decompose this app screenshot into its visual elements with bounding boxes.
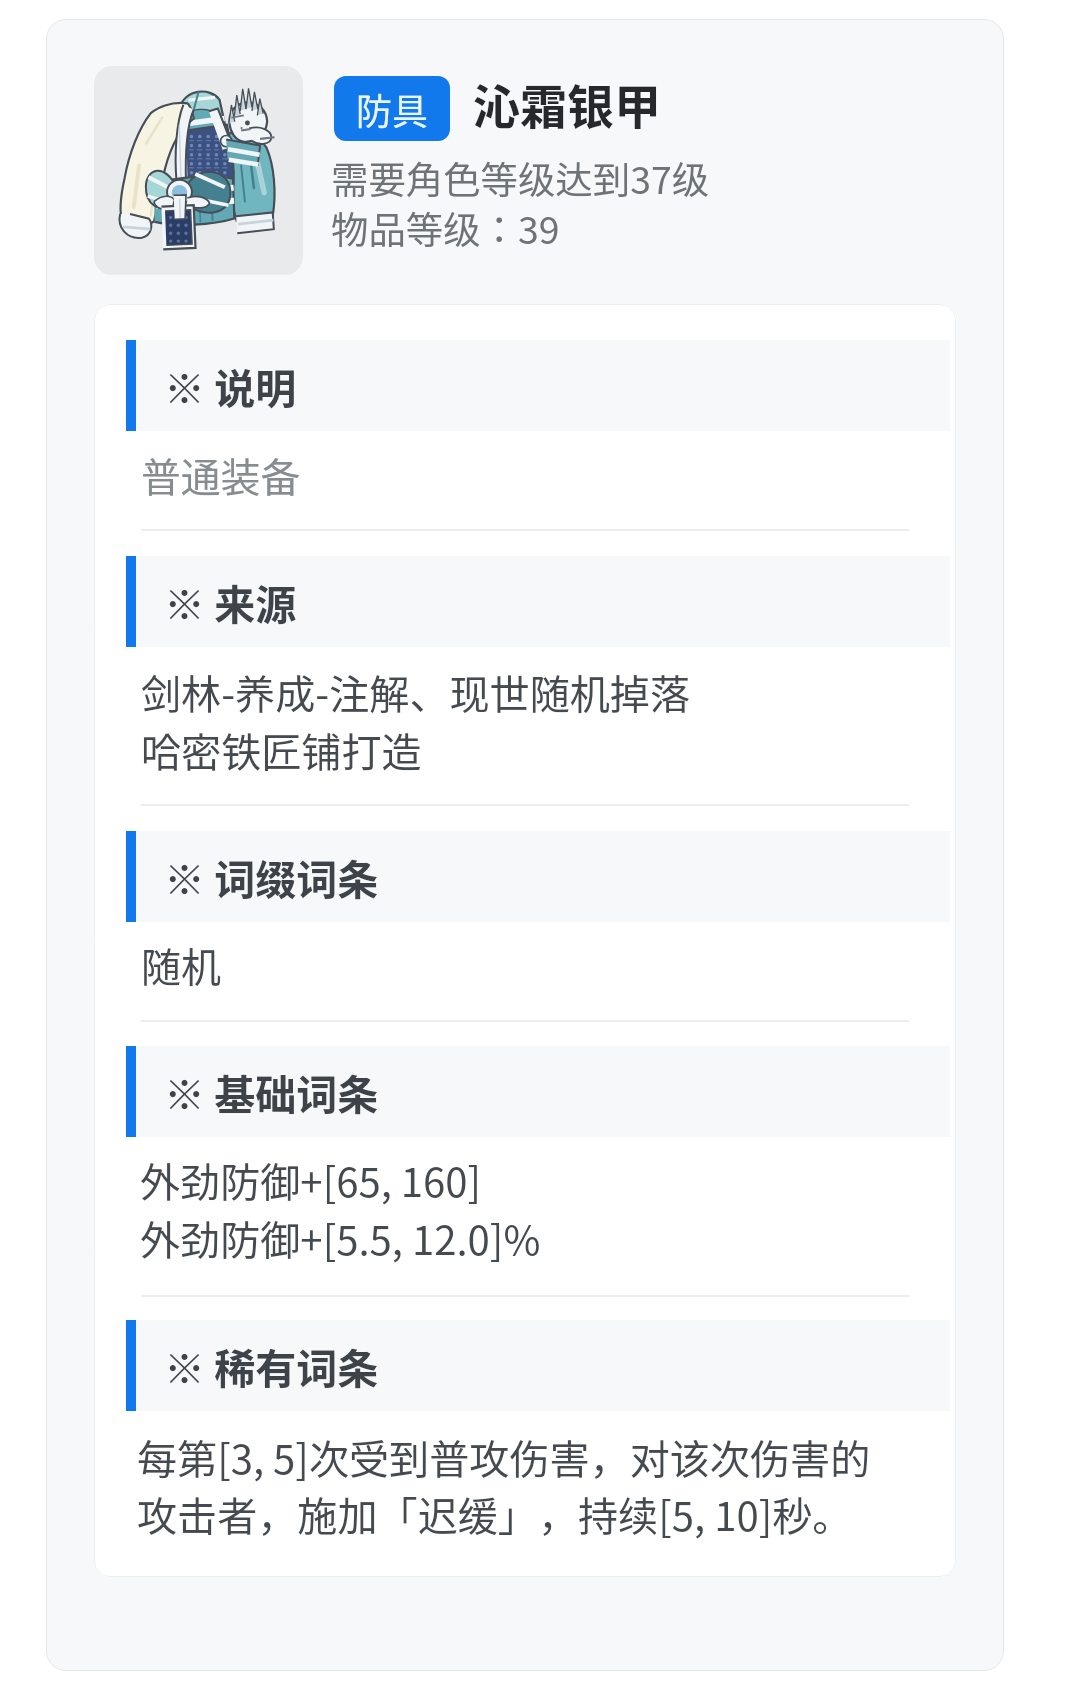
staticText: ※ 稀有词条 — [164, 1336, 379, 1395]
staticText: 随机 — [141, 936, 221, 994]
button[interactable]: ※ 说明 — [126, 340, 950, 431]
staticText: ※ 基础词条 — [164, 1062, 379, 1121]
button[interactable]: ※ 基础词条 — [126, 1046, 950, 1137]
staticText: ※ 词缀词条 — [164, 847, 379, 906]
staticText: 沁霜银甲 — [473, 69, 661, 137]
button[interactable]: 物品图标 — [94, 66, 303, 275]
staticText: 需要角色等级达到37级 — [331, 151, 710, 205]
staticText: ※ 来源 — [164, 572, 297, 631]
staticText: 普通装备 — [141, 446, 301, 504]
staticText: 每第[3, 5]次受到普攻伤害，对该次伤害的攻击者，施加「迟缓」，持续[5, 1… — [137, 1427, 885, 1543]
button[interactable]: 防具 — [334, 76, 450, 141]
button[interactable]: ※ 稀有词条 — [126, 1320, 950, 1411]
button[interactable]: ※ 来源 — [126, 556, 950, 647]
staticText: ※ 说明 — [164, 356, 297, 415]
button[interactable]: ※ 词缀词条 — [126, 831, 950, 922]
staticText: 防具 — [356, 83, 429, 135]
staticText: 物品等级：39 — [331, 201, 560, 255]
staticText: 剑林-养成-注解、现世随机掉落 哈密铁匠铺打造 — [141, 662, 691, 779]
staticText: 外劲防御+[65, 160] 外劲防御+[5.5, 12.0]% — [140, 1150, 541, 1267]
